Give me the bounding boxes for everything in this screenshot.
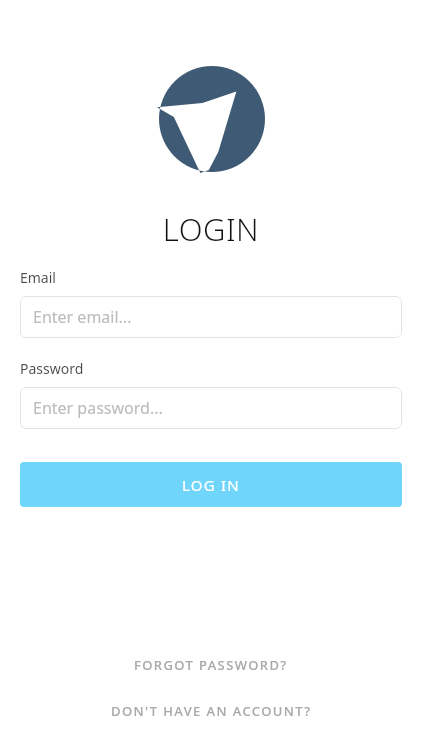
staticText: Enter password...	[33, 397, 163, 419]
staticText: Password	[20, 359, 84, 378]
button[interactable]: LOG IN	[20, 462, 402, 507]
staticText: DON'T HAVE AN ACCOUNT?	[111, 702, 312, 720]
button[interactable]: FORGOT PASSWORD?	[118, 650, 304, 680]
button[interactable]: DON'T HAVE AN ACCOUNT?	[95, 696, 328, 726]
staticText: LOG IN	[182, 475, 240, 495]
staticText: FORGOT PASSWORD?	[134, 656, 288, 674]
staticText: LOGIN	[0, 208, 422, 250]
button[interactable]: Enter email...	[20, 296, 402, 338]
button[interactable]: Enter password...	[20, 387, 402, 429]
staticText: Email	[20, 268, 56, 287]
staticText: Enter email...	[33, 306, 132, 328]
other: App logo	[156, 63, 268, 171]
